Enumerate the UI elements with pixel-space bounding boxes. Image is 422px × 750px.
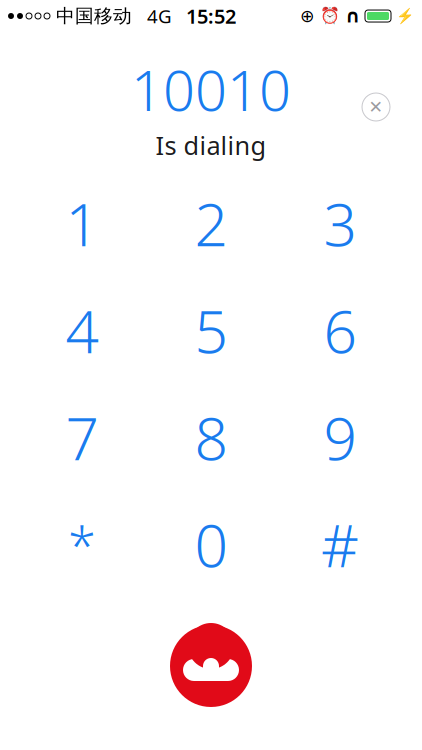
staticText: 4G bbox=[132, 4, 172, 28]
staticText: 4 bbox=[65, 291, 98, 369]
staticText: 3 bbox=[323, 184, 356, 262]
staticText: 1 bbox=[65, 184, 98, 262]
staticText: * bbox=[68, 511, 96, 578]
button[interactable]: 0 bbox=[146, 491, 275, 598]
staticText: 中国移动 bbox=[50, 4, 132, 27]
staticText: 2 bbox=[194, 184, 227, 262]
staticText: 6 bbox=[323, 291, 356, 369]
staticText: ✕ bbox=[368, 97, 383, 117]
staticText: # bbox=[321, 505, 359, 583]
button[interactable]: 8 bbox=[146, 384, 275, 491]
button[interactable]: End call bbox=[163, 618, 259, 714]
button[interactable]: Clear number bbox=[354, 85, 398, 129]
staticText: 9 bbox=[323, 398, 356, 476]
staticText: ⊕ bbox=[300, 6, 315, 26]
button[interactable]: 4 bbox=[17, 277, 146, 384]
staticText: ⏰ bbox=[320, 7, 340, 25]
staticText: 8 bbox=[194, 398, 227, 476]
button[interactable]: 9 bbox=[275, 384, 404, 491]
button[interactable]: 5 bbox=[146, 277, 275, 384]
button[interactable]: * bbox=[17, 491, 146, 598]
staticText: 10010 bbox=[131, 52, 291, 126]
button[interactable]: 2 bbox=[146, 170, 275, 277]
staticText: ∩ bbox=[345, 5, 360, 27]
button[interactable]: 1 bbox=[17, 170, 146, 277]
button[interactable]: 6 bbox=[275, 277, 404, 384]
button[interactable]: 7 bbox=[17, 384, 146, 491]
staticText: Is dialing bbox=[155, 128, 266, 162]
staticText: 15:52 bbox=[186, 3, 236, 29]
staticText: ⚡ bbox=[396, 8, 414, 24]
button[interactable]: 3 bbox=[275, 170, 404, 277]
staticText: 7 bbox=[65, 398, 98, 476]
staticText: 5 bbox=[194, 291, 227, 369]
button[interactable]: # bbox=[275, 491, 404, 598]
staticText: 0 bbox=[194, 505, 227, 583]
